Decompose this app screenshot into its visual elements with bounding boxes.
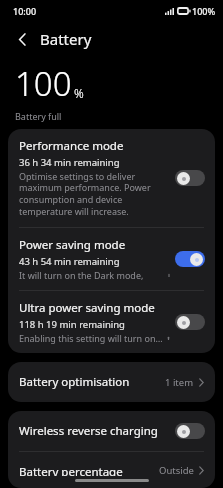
staticText: Battery full [15, 110, 62, 122]
staticText: Battery optimisation [19, 374, 165, 390]
button[interactable]: Battery optimisation [8, 362, 215, 402]
staticText: Power saving mode [19, 237, 126, 253]
staticText: It will turn on the Dark mode, turn… [19, 269, 169, 281]
staticText: Optimise settings to deliver maximum per… [19, 170, 169, 218]
button[interactable]: Performance mode [172, 166, 208, 190]
button[interactable]: Ultra power saving mode [172, 310, 208, 334]
staticText: 43 h 54 min remaining [19, 255, 120, 268]
staticText: 100 [15, 61, 72, 106]
button[interactable]: Performance mode [8, 129, 215, 227]
staticText: 10:00 [13, 5, 37, 17]
button[interactable]: Wireless reverse charging [8, 411, 215, 451]
button[interactable]: Back [10, 27, 34, 51]
button[interactable]: Ultra power saving mode [8, 291, 215, 353]
button[interactable]: Battery percentage [8, 452, 215, 488]
staticText: Battery percentage [19, 464, 159, 476]
staticText: Performance mode [19, 138, 124, 154]
staticText: Wireless reverse charging [19, 423, 172, 439]
staticText: 36 h 34 min remaining [19, 156, 120, 169]
staticText: Ultra power saving mode [19, 300, 155, 316]
staticText: Battery [40, 29, 92, 49]
button[interactable]: Power saving mode [8, 228, 215, 290]
staticText: 1 item [165, 376, 194, 389]
staticText: 118 h 19 min remaining [19, 318, 125, 331]
staticText: Enabling this setting will turn on… [19, 332, 163, 344]
staticText: % [74, 85, 84, 101]
button[interactable]: Power saving mode [172, 247, 208, 271]
button[interactable]: Wireless reverse charging [172, 419, 208, 443]
staticText: 100% [192, 5, 216, 17]
staticText: Outside [159, 464, 194, 476]
